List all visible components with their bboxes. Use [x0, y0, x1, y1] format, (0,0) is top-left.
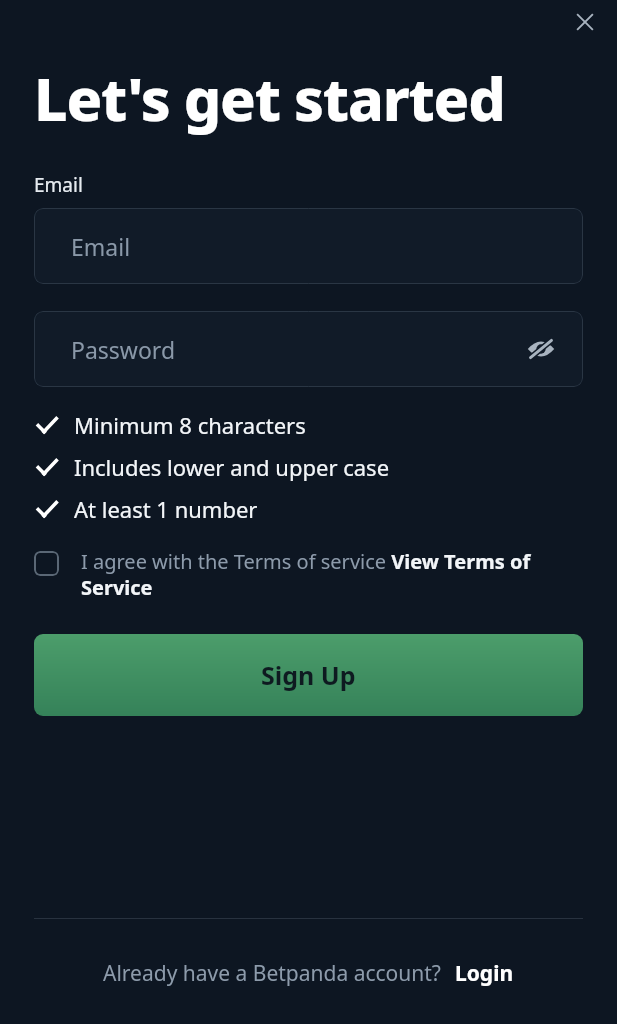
- button[interactable]: I agree with the Terms of service View T…: [34, 548, 583, 601]
- staticText: Email: [71, 231, 131, 262]
- staticText: Already have a Betpanda account?: [103, 959, 441, 988]
- staticText: Includes lower and upper case: [74, 452, 390, 482]
- staticText: Email: [34, 172, 83, 198]
- staticText: Minimum 8 characters: [74, 410, 306, 440]
- button[interactable]: Show password: [519, 327, 563, 371]
- staticText: Sign Up: [261, 658, 356, 692]
- button[interactable]: Login: [455, 959, 514, 988]
- staticText: At least 1 number: [74, 494, 258, 524]
- staticText: I agree with the Terms of service View T…: [81, 548, 583, 601]
- button[interactable]: Email: [34, 208, 583, 284]
- button[interactable]: Close: [565, 2, 605, 42]
- staticText: Let's get started: [34, 58, 505, 138]
- staticText: Login: [455, 959, 514, 988]
- staticText: Password: [71, 334, 176, 365]
- button[interactable]: Password: [34, 311, 583, 387]
- button[interactable]: Sign Up: [34, 634, 583, 716]
